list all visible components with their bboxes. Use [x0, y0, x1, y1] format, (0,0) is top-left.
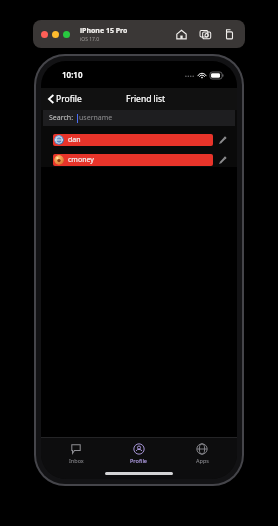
button[interactable]: Home [175, 28, 188, 41]
button[interactable]: Apps [174, 441, 230, 466]
button[interactable]: Edit dan [217, 135, 228, 146]
button[interactable]: cmoney [53, 153, 228, 167]
staticText: 10:10 [62, 69, 83, 80]
button[interactable]: Edit cmoney [217, 155, 228, 166]
button[interactable]: Screenshot [199, 28, 212, 41]
button[interactable]: Search: [43, 110, 235, 126]
button[interactable]: dan [53, 133, 228, 147]
staticText: Apps [196, 457, 209, 464]
staticText: dan [68, 135, 81, 145]
staticText: Friend list [126, 93, 166, 105]
button[interactable]: Rotate [223, 28, 236, 41]
staticText: iOS 17.0 [80, 36, 100, 43]
staticText: iPhone 15 Pro [80, 26, 128, 36]
staticText: cmoney [68, 155, 94, 165]
staticText: Search: [49, 113, 74, 123]
button[interactable]: Profile [111, 441, 167, 466]
staticText: Profile [130, 457, 148, 464]
button[interactable]: Inbox [48, 441, 104, 466]
button[interactable]: Profile [45, 91, 85, 107]
staticText: username [79, 113, 113, 123]
staticText: Inbox [69, 457, 84, 464]
staticText: Profile [56, 93, 82, 105]
